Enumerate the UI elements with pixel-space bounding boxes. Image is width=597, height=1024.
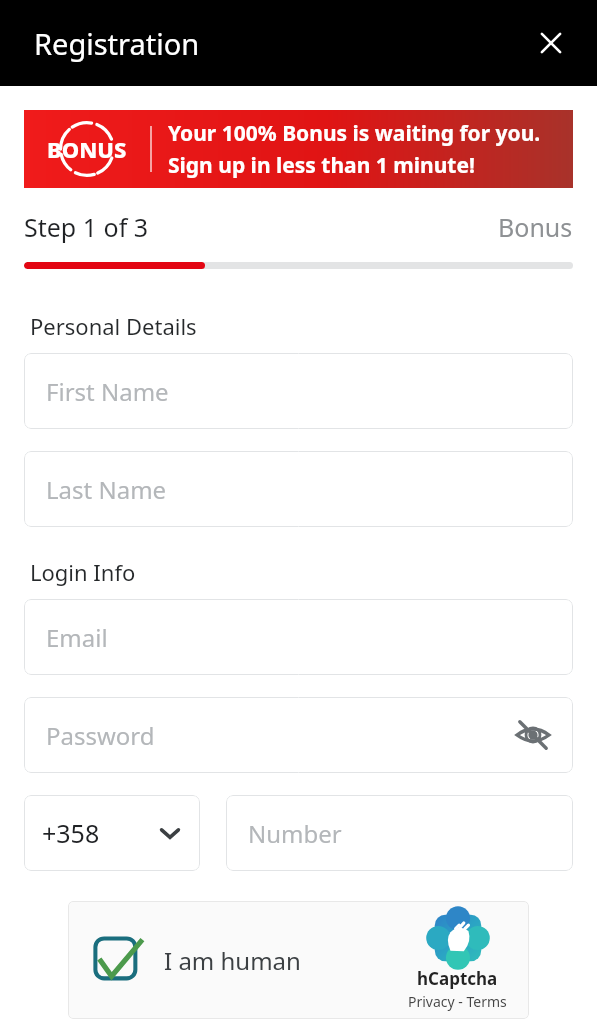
staticText: Last Name	[46, 473, 167, 506]
staticText: Registration	[34, 24, 200, 63]
staticText: Number	[248, 817, 342, 850]
staticText: Privacy - Terms	[408, 992, 507, 1011]
staticText: Personal Details	[30, 311, 197, 341]
button[interactable]: Close	[527, 19, 575, 67]
button[interactable]: Email	[24, 599, 573, 675]
staticText: BONUS	[47, 134, 127, 164]
button[interactable]: Last Name	[24, 451, 573, 527]
staticText: Email	[46, 621, 108, 654]
button[interactable]: Password	[24, 697, 573, 773]
staticText: hCaptcha	[417, 967, 498, 990]
button[interactable]: First Name	[24, 353, 573, 429]
staticText: Password	[46, 719, 155, 752]
button[interactable]: BONUS	[24, 110, 573, 188]
button[interactable]: Number	[226, 795, 573, 871]
staticText: Step 1 of 3	[24, 210, 149, 244]
staticText: +358	[42, 816, 100, 850]
staticText: Bonus	[498, 210, 573, 244]
staticText: Login Info	[30, 557, 136, 587]
staticText: Sign up in less than 1 minute!	[168, 151, 475, 180]
button[interactable]: Show password	[513, 715, 553, 755]
staticText: First Name	[46, 375, 169, 408]
staticText: Your 100% Bonus is waiting for you.	[168, 119, 541, 148]
button[interactable]: +358	[24, 795, 200, 871]
button[interactable]: I am human	[68, 901, 529, 1019]
staticText: I am human	[164, 944, 301, 977]
